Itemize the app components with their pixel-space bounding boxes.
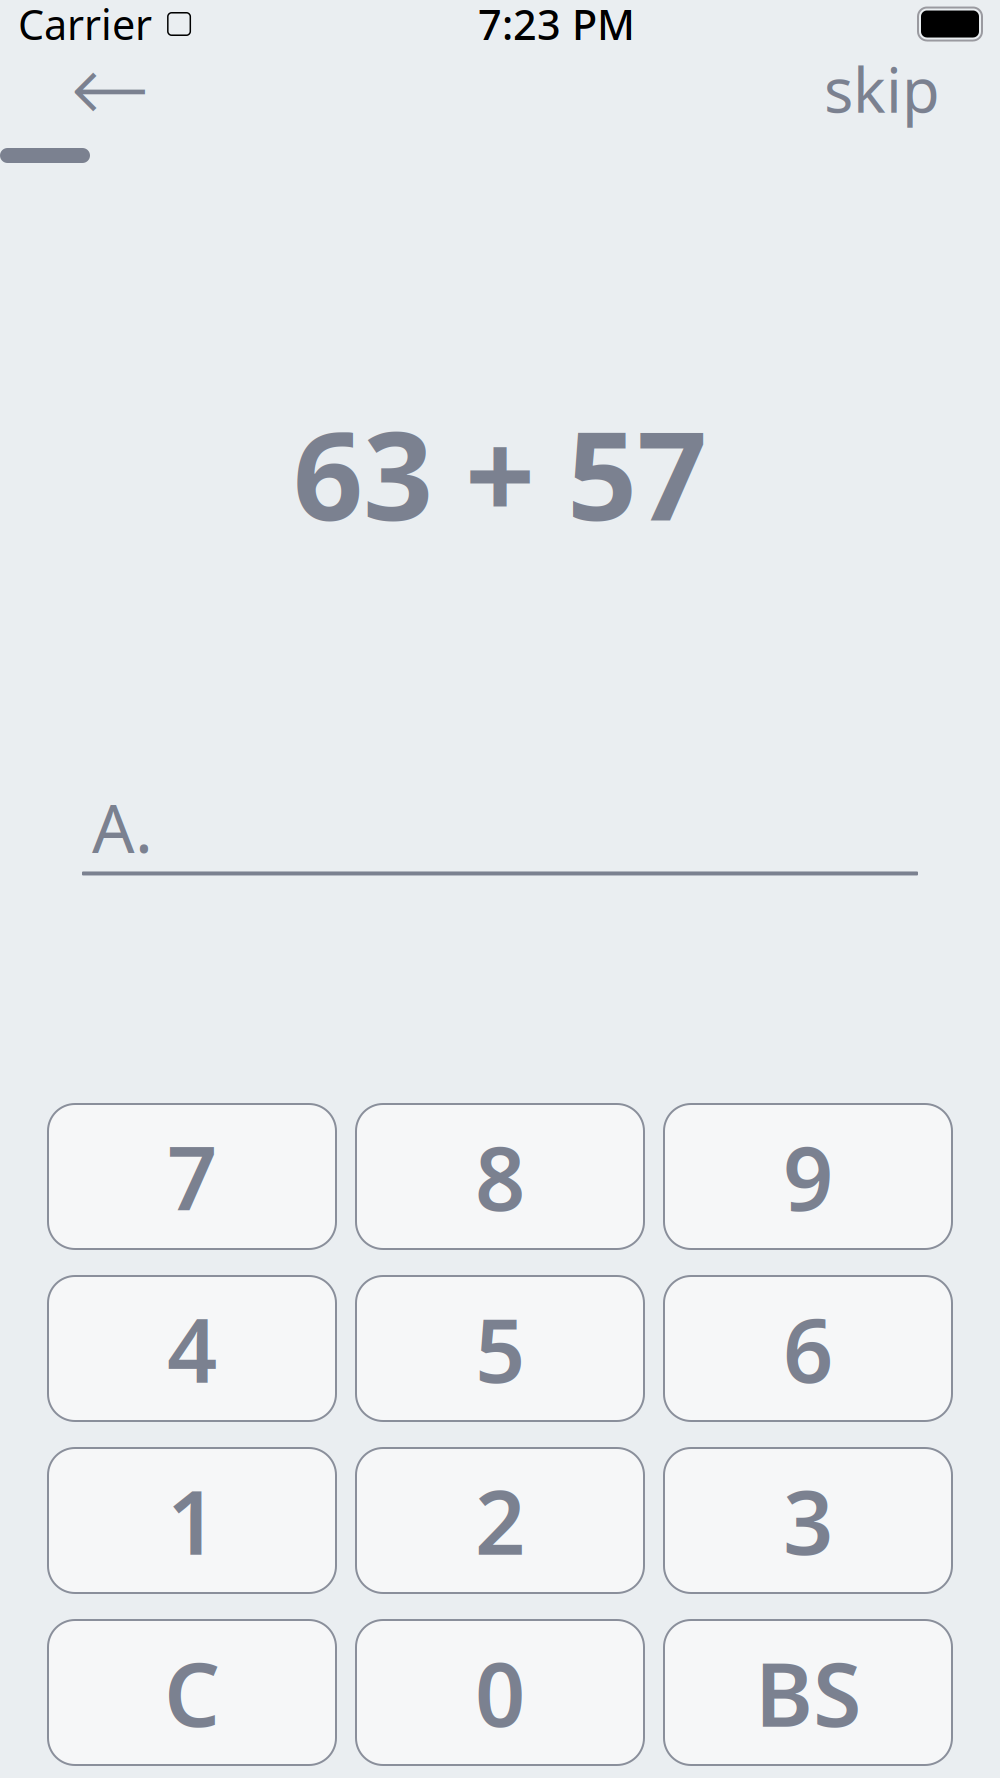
staticText: 3 — [783, 1462, 833, 1579]
staticText: 8 — [475, 1118, 525, 1235]
staticText: 5 — [475, 1290, 525, 1407]
button[interactable]: 8 — [356, 1104, 644, 1249]
button[interactable]: 3 — [664, 1448, 952, 1593]
staticText: 2 — [475, 1462, 525, 1579]
staticText: Carrier — [18, 0, 152, 51]
staticText: 7:23 PM — [478, 0, 635, 51]
button[interactable]: Back — [55, 50, 165, 128]
button[interactable]: 6 — [664, 1276, 952, 1421]
staticText: 7 — [167, 1118, 217, 1235]
staticText: skip — [824, 48, 940, 130]
button[interactable]: 1 — [48, 1448, 336, 1593]
button[interactable]: 7 — [48, 1104, 336, 1249]
button[interactable]: 9 — [664, 1104, 952, 1249]
staticText: 9 — [783, 1118, 833, 1235]
staticText: ← — [70, 34, 150, 143]
button[interactable]: 4 — [48, 1276, 336, 1421]
button[interactable]: 0 — [356, 1620, 644, 1765]
button[interactable]: skip — [814, 50, 950, 128]
staticText: 0 — [475, 1634, 525, 1751]
staticText: 4 — [167, 1290, 217, 1407]
button[interactable]: 2 — [356, 1448, 644, 1593]
button[interactable]: C — [48, 1620, 336, 1765]
staticText: 63 + 57 — [293, 391, 707, 554]
button[interactable]: BS — [664, 1620, 952, 1765]
staticText: 6 — [783, 1290, 833, 1407]
staticText: A. — [92, 783, 153, 871]
staticText: BS — [755, 1634, 861, 1751]
staticText: 1 — [167, 1462, 217, 1579]
staticText: C — [164, 1634, 220, 1751]
button[interactable]: 5 — [356, 1276, 644, 1421]
